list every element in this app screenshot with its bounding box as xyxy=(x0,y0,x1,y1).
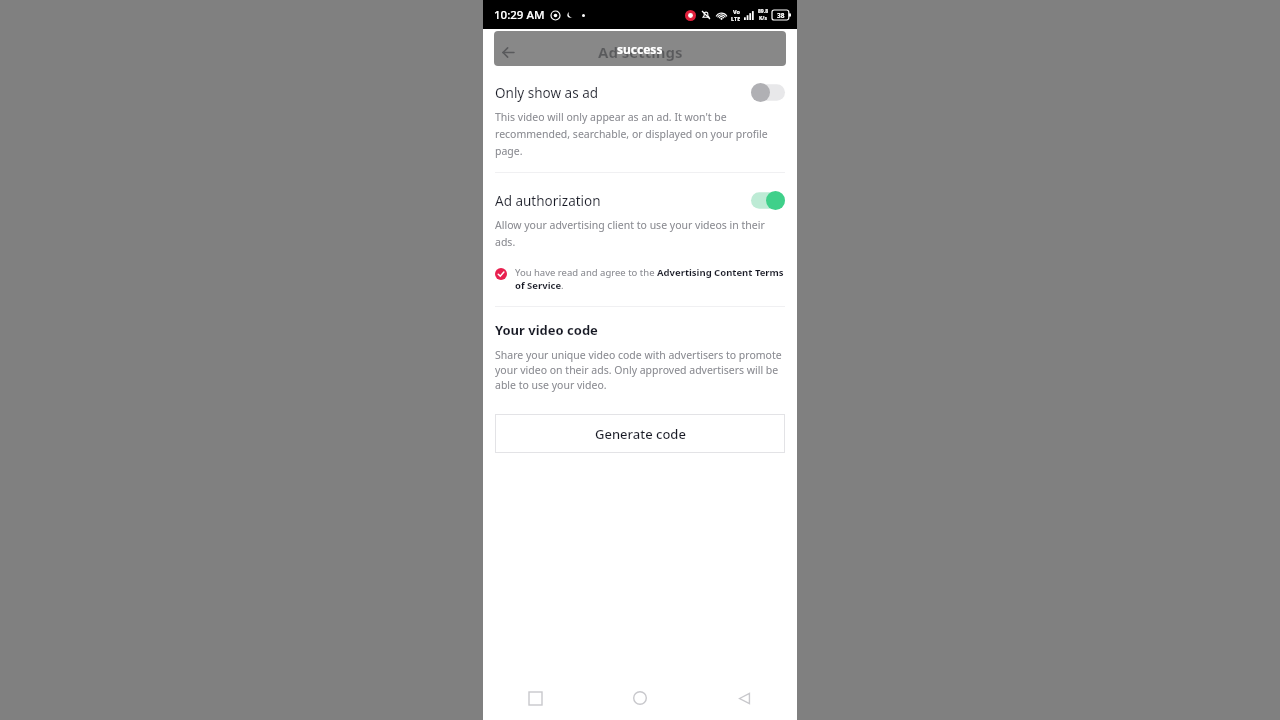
staticText: Ad authorization xyxy=(495,192,751,210)
staticText: K/s xyxy=(759,15,767,22)
button[interactable]: Recent apps xyxy=(483,676,587,720)
staticText: Share your unique video code with advert… xyxy=(495,348,785,392)
button[interactable]: You have read and agree to the Advertisi… xyxy=(483,266,797,292)
button[interactable]: Toggle on xyxy=(751,191,785,210)
button[interactable]: Back xyxy=(491,35,525,69)
button[interactable]: Back xyxy=(692,676,797,720)
staticText: 10:29 AM xyxy=(494,7,545,23)
staticText: 38 xyxy=(777,11,785,20)
staticText: LTE xyxy=(731,15,741,22)
staticText: Your video code xyxy=(495,321,598,339)
staticText: Only show as ad xyxy=(495,84,751,102)
staticText: success xyxy=(617,41,663,57)
button[interactable]: Home xyxy=(587,676,692,720)
staticText: You have read and agree to the Advertisi… xyxy=(515,266,785,292)
staticText: This video will only appear as an ad. It… xyxy=(495,110,785,158)
staticText: Allow your advertising client to use you… xyxy=(495,218,785,249)
button[interactable]: Generate code xyxy=(495,414,785,453)
staticText: Generate code xyxy=(595,425,686,443)
staticText: Vo xyxy=(733,8,740,15)
button[interactable]: Toggle off xyxy=(751,83,785,102)
staticText: Ad settings xyxy=(598,42,683,62)
staticText: 89.8 xyxy=(758,8,768,15)
